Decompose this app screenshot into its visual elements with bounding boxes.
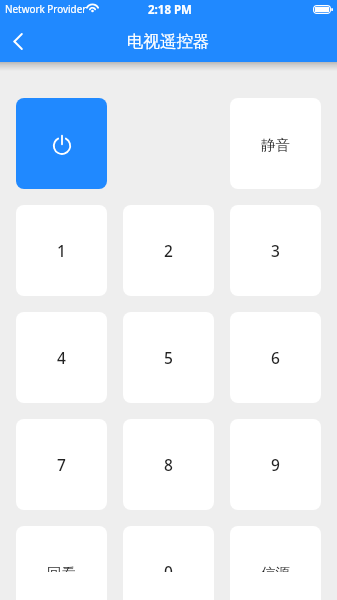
button[interactable]: 静音 bbox=[230, 98, 321, 189]
button[interactable]: 0 bbox=[123, 526, 214, 600]
staticText: 2:18 PM bbox=[148, 2, 192, 18]
button[interactable]: 1 bbox=[16, 205, 107, 296]
staticText: 0 bbox=[164, 561, 173, 572]
staticText: 9 bbox=[271, 454, 280, 475]
button[interactable] bbox=[16, 98, 107, 189]
staticText: 4 bbox=[57, 347, 66, 368]
staticText: 回看 bbox=[47, 564, 76, 572]
staticText: Network Provider bbox=[5, 2, 87, 15]
button[interactable]: 4 bbox=[16, 312, 107, 403]
staticText: 信源 bbox=[261, 564, 290, 572]
staticText: 3 bbox=[271, 240, 280, 261]
staticText: 2 bbox=[164, 240, 173, 261]
button[interactable]: Back bbox=[0, 23, 36, 59]
button[interactable]: 3 bbox=[230, 205, 321, 296]
button[interactable]: 5 bbox=[123, 312, 214, 403]
staticText: 电视遥控器 bbox=[127, 31, 210, 52]
button[interactable]: 回看 bbox=[16, 526, 107, 600]
button[interactable]: 9 bbox=[230, 419, 321, 510]
staticText: 8 bbox=[164, 454, 173, 475]
staticText: 1 bbox=[57, 240, 66, 261]
staticText: 6 bbox=[271, 347, 280, 368]
staticText: 5 bbox=[164, 347, 173, 368]
staticText: 7 bbox=[57, 454, 66, 475]
button[interactable]: 7 bbox=[16, 419, 107, 510]
button[interactable]: 6 bbox=[230, 312, 321, 403]
staticText: 静音 bbox=[261, 136, 290, 154]
button[interactable]: 2 bbox=[123, 205, 214, 296]
button[interactable]: 信源 bbox=[230, 526, 321, 600]
button[interactable]: 8 bbox=[123, 419, 214, 510]
